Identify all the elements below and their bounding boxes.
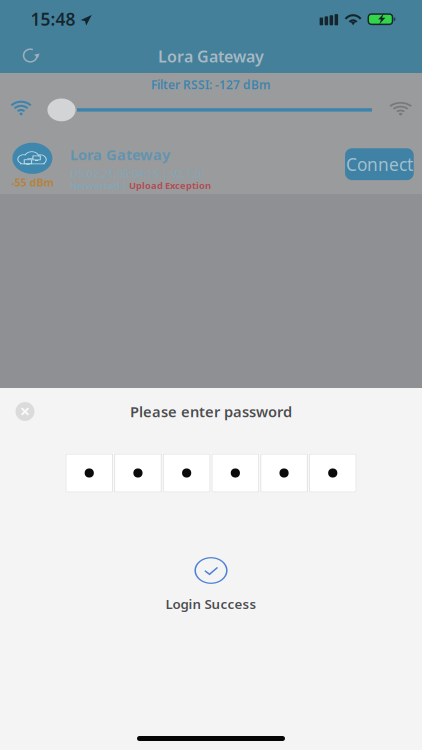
button[interactable]: Close	[3, 389, 47, 433]
staticText: -55 dBm	[11, 175, 53, 189]
staticText: Please enter password	[130, 402, 292, 421]
staticText: Login Success	[165, 595, 256, 613]
staticText: Networked |	[70, 179, 129, 192]
staticText: Lora Gateway	[70, 145, 170, 164]
staticText: Lora Gateway	[158, 46, 264, 67]
staticText: Filter RSSI: -127 dBm	[151, 76, 271, 92]
staticText: Upload Exception	[129, 179, 211, 192]
staticText: 15:48	[31, 7, 76, 30]
button[interactable]: -55 dBm	[0, 134, 422, 194]
staticText: D5:02:21:06:04:15 | V2.1.0	[70, 166, 201, 181]
button[interactable]: Refresh	[8, 38, 52, 73]
staticText: Connect	[346, 153, 413, 176]
